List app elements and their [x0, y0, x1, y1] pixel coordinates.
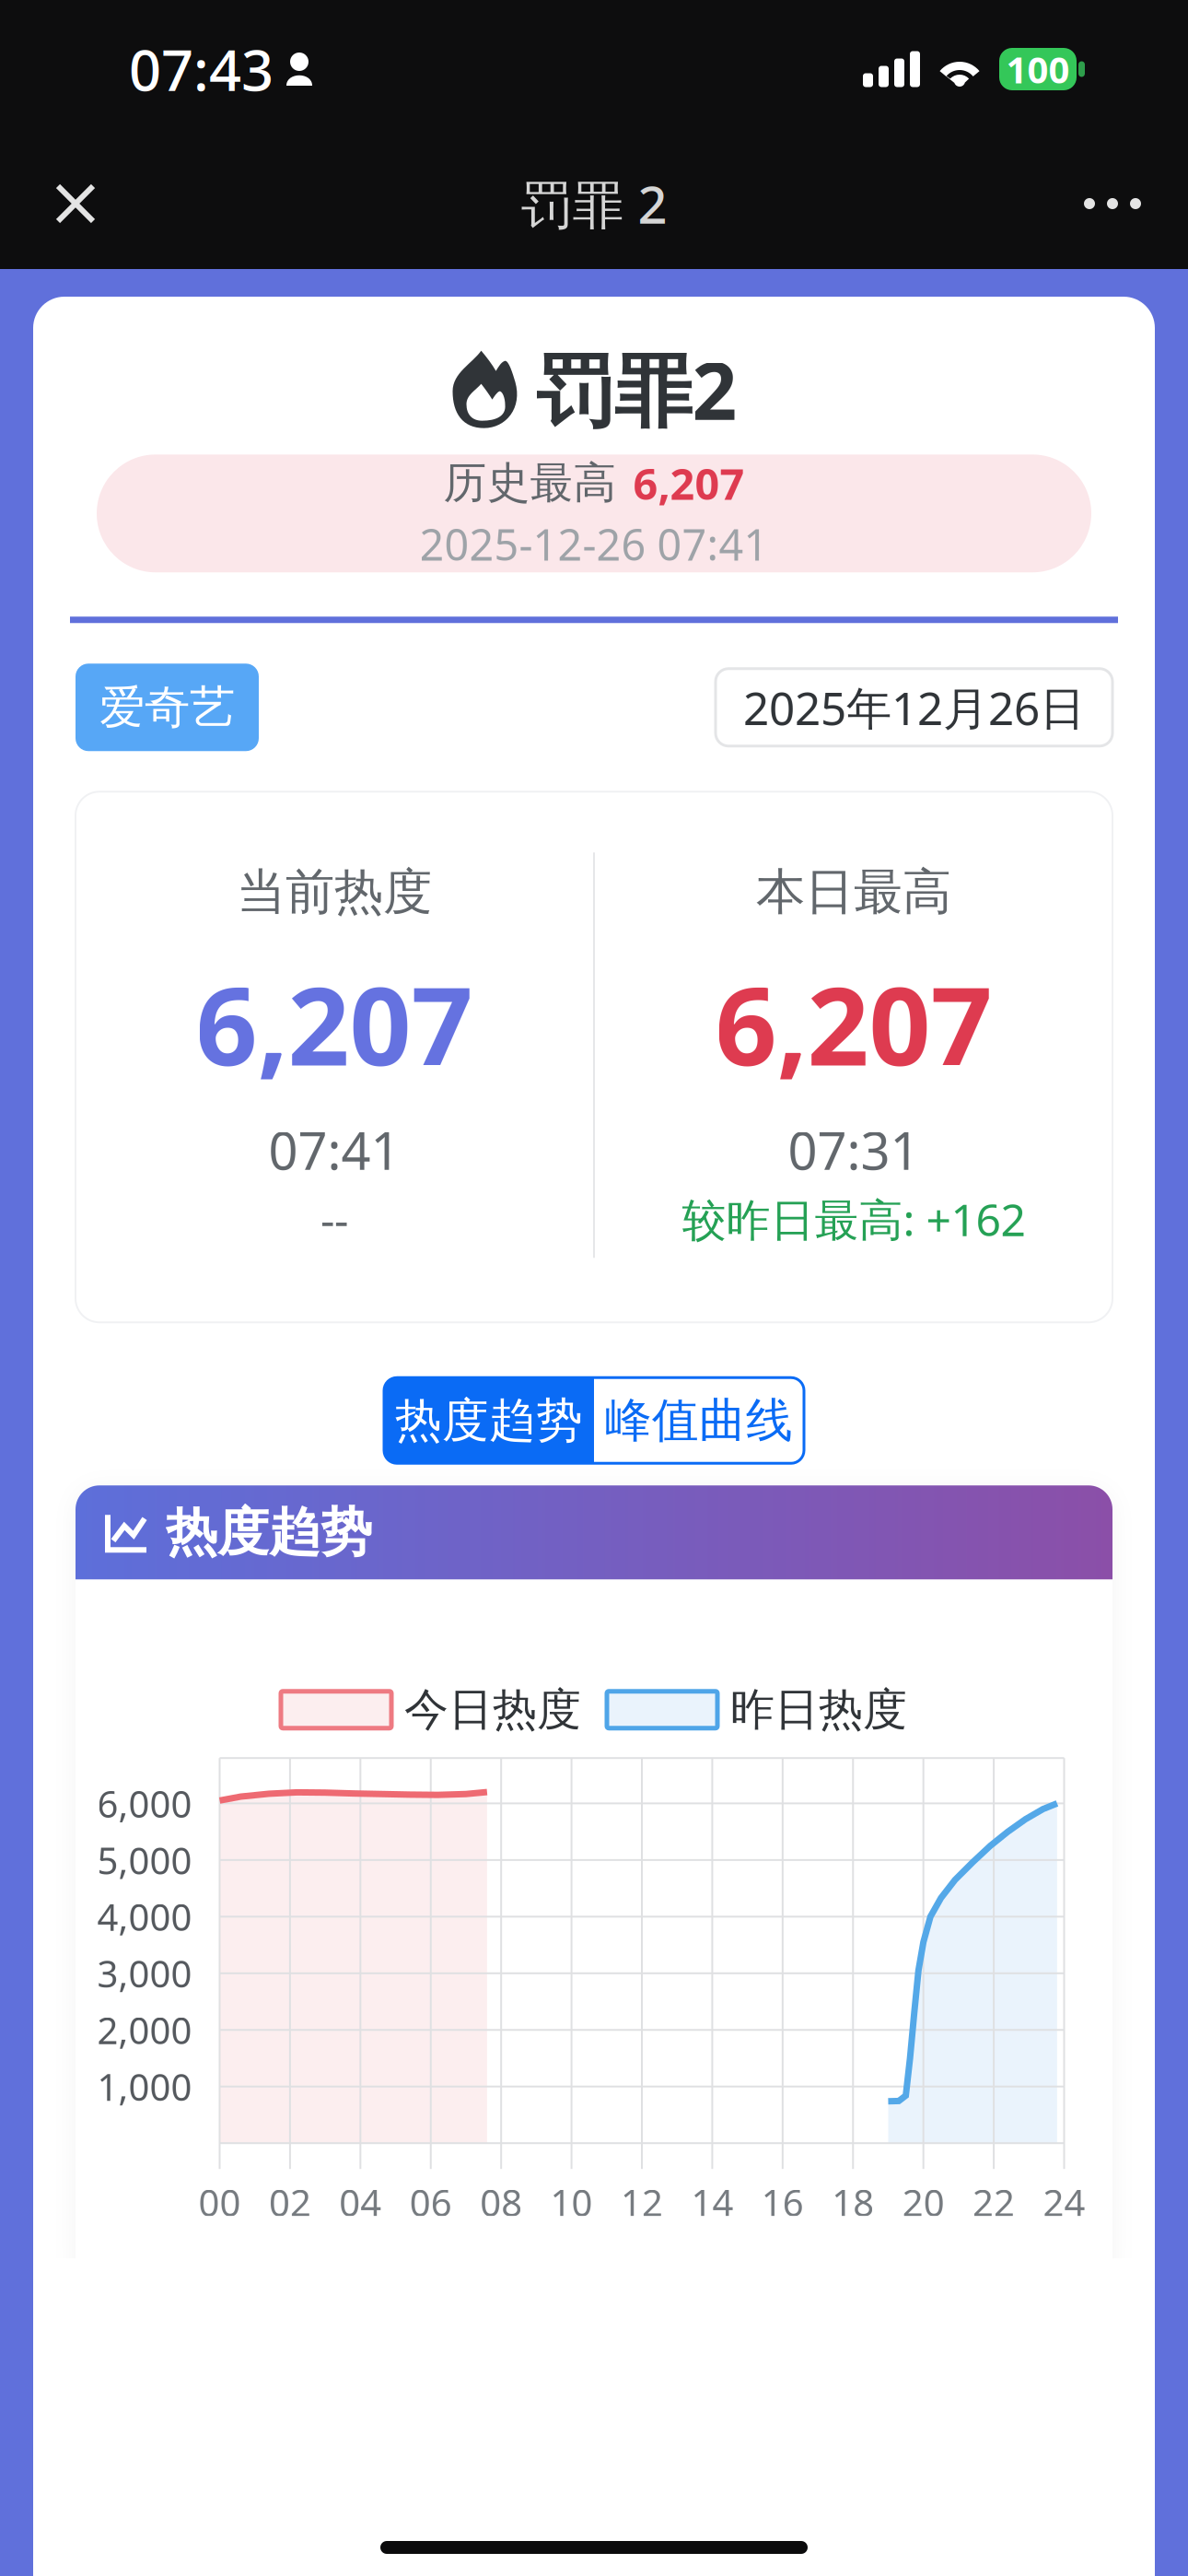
staticText: 本日最高	[756, 862, 951, 922]
staticText: 历史最高	[443, 457, 617, 509]
staticText: 6,000	[97, 1779, 192, 1828]
staticText: 12	[621, 2178, 663, 2227]
staticText: 罚罪 2	[521, 169, 667, 238]
staticText: 6,207	[633, 454, 745, 512]
staticText: 罚罪2	[536, 337, 737, 442]
staticText: 2,000	[97, 2005, 192, 2054]
staticText: 2025-12-26 07:41	[419, 515, 769, 572]
button[interactable]: Close	[24, 148, 127, 259]
staticText: 22	[973, 2178, 1015, 2227]
staticText: 02	[269, 2178, 311, 2227]
staticText: 1,000	[97, 2062, 192, 2111]
staticText: 爱奇艺	[99, 679, 235, 735]
staticText: 24	[1043, 2178, 1085, 2227]
staticText: 今日热度	[404, 1683, 581, 1737]
staticText: 4,000	[97, 1892, 192, 1941]
button[interactable]: 2025年12月26日	[716, 669, 1112, 746]
staticText: 6,207	[196, 952, 473, 1095]
button[interactable]: 爱奇艺	[76, 664, 259, 751]
staticText: 16	[761, 2178, 804, 2227]
staticText: 07:41	[268, 1116, 400, 1184]
staticText: 6,207	[715, 952, 992, 1095]
staticText: 热度趋势	[395, 1392, 583, 1449]
staticText: 07:31	[788, 1116, 920, 1184]
button[interactable]: 热度趋势	[384, 1378, 594, 1463]
button[interactable]: More options	[1061, 148, 1164, 259]
staticText: 06	[410, 2178, 452, 2227]
staticText: 热度趋势	[166, 1501, 372, 1564]
staticText: 04	[339, 2178, 382, 2227]
staticText: 昨日热度	[730, 1683, 907, 1737]
staticText: 当前热度	[237, 862, 432, 922]
staticText: 100	[1006, 45, 1070, 94]
staticText: 18	[832, 2178, 874, 2227]
staticText: 3,000	[97, 1949, 192, 1998]
staticText: 14	[691, 2178, 733, 2227]
staticText: --	[320, 1190, 348, 1248]
staticText: 5,000	[97, 1836, 192, 1884]
staticText: 10	[550, 2178, 593, 2227]
staticText: 00	[198, 2178, 241, 2227]
staticText: 20	[902, 2178, 945, 2227]
staticText: 峰值曲线	[605, 1392, 793, 1449]
button[interactable]: 峰值曲线	[594, 1378, 804, 1463]
staticText: 较昨日最高: +162	[682, 1190, 1025, 1248]
staticText: 2025年12月26日	[743, 677, 1085, 738]
staticText: 07:43	[129, 32, 274, 107]
staticText: 08	[480, 2178, 522, 2227]
